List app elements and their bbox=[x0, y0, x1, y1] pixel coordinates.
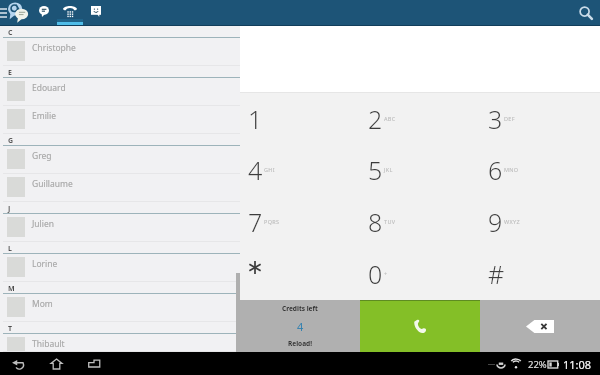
staticText: GHI bbox=[264, 166, 275, 173]
button[interactable]: Lorine bbox=[0, 254, 240, 282]
staticText: Julien bbox=[32, 218, 55, 230]
button[interactable] bbox=[240, 248, 360, 300]
button[interactable]: Messages bbox=[31, 0, 57, 26]
button[interactable]: # bbox=[480, 248, 600, 300]
staticText: Greg bbox=[32, 150, 52, 162]
staticText: WXYZ bbox=[504, 218, 520, 225]
button[interactable]: Credits left bbox=[240, 300, 360, 352]
button[interactable]: Back bbox=[6, 353, 30, 375]
button[interactable]: 4 bbox=[240, 144, 360, 196]
button[interactable]: Julien bbox=[0, 214, 240, 242]
button[interactable]: Call bbox=[360, 300, 480, 352]
button[interactable]: Thibault bbox=[0, 334, 240, 352]
button[interactable]: 3 bbox=[480, 93, 600, 144]
staticText: MNO bbox=[504, 166, 519, 173]
staticText: Edouard bbox=[32, 82, 66, 94]
staticText: Lorine bbox=[32, 258, 58, 270]
button[interactable]: 5 bbox=[360, 144, 480, 196]
staticText: 0 bbox=[368, 257, 383, 291]
staticText: Christophe bbox=[32, 42, 76, 54]
button[interactable]: Search bbox=[572, 0, 600, 26]
staticText: ABC bbox=[384, 115, 396, 122]
staticText: J bbox=[8, 204, 11, 214]
button[interactable]: Home bbox=[44, 353, 68, 375]
staticText: 5 bbox=[368, 153, 383, 187]
staticText: 3 bbox=[488, 102, 503, 136]
staticText: PQRS bbox=[264, 218, 280, 225]
button[interactable]: 8 bbox=[360, 196, 480, 248]
button[interactable]: Dialer bbox=[57, 0, 83, 26]
button[interactable]: App logo bbox=[8, 2, 29, 23]
staticText: E bbox=[8, 68, 12, 78]
staticText: 4 bbox=[248, 153, 263, 187]
button[interactable]: 0 bbox=[360, 248, 480, 300]
staticText: Credits left bbox=[282, 304, 318, 313]
button[interactable]: 1 bbox=[240, 93, 360, 144]
staticText: Reload! bbox=[288, 339, 312, 348]
staticText: 11:08 bbox=[563, 357, 592, 372]
staticText: G bbox=[8, 136, 14, 146]
button[interactable]: 6 bbox=[480, 144, 600, 196]
staticText: Mom bbox=[32, 298, 53, 310]
staticText: Thibault bbox=[32, 338, 65, 350]
staticText: 2 bbox=[368, 102, 383, 136]
staticText: DEF bbox=[504, 115, 515, 122]
staticText: JKL bbox=[384, 166, 393, 173]
staticText: Guillaume bbox=[32, 178, 73, 190]
button[interactable]: Recents bbox=[82, 353, 106, 375]
button[interactable]: Delete bbox=[480, 300, 600, 352]
staticText: 1 bbox=[248, 102, 263, 136]
button[interactable]: Contacts bbox=[83, 0, 109, 26]
button[interactable]: 9 bbox=[480, 196, 600, 248]
staticText: Emilie bbox=[32, 110, 57, 122]
button[interactable]: Greg bbox=[0, 146, 240, 174]
staticText: TUV bbox=[384, 218, 396, 225]
staticText: T bbox=[8, 324, 13, 334]
staticText: L bbox=[8, 244, 12, 254]
button[interactable]: 2 bbox=[360, 93, 480, 144]
staticText: # bbox=[488, 257, 505, 291]
staticText: 8 bbox=[368, 205, 383, 239]
button[interactable]: Menu bbox=[0, 0, 8, 26]
staticText: 4 bbox=[297, 319, 304, 334]
staticText: 9 bbox=[488, 205, 503, 239]
button[interactable]: Guillaume bbox=[0, 174, 240, 202]
staticText: C bbox=[8, 28, 13, 38]
button[interactable]: Mom bbox=[0, 294, 240, 322]
staticText: 7 bbox=[248, 205, 263, 239]
staticText: 6 bbox=[488, 153, 503, 187]
staticText: + bbox=[384, 270, 388, 277]
button[interactable]: Emilie bbox=[0, 106, 240, 134]
staticText: 22% bbox=[528, 358, 547, 371]
button[interactable]: Edouard bbox=[0, 78, 240, 106]
button[interactable]: 7 bbox=[240, 196, 360, 248]
staticText: M bbox=[8, 284, 15, 294]
button[interactable]: Christophe bbox=[0, 38, 240, 66]
